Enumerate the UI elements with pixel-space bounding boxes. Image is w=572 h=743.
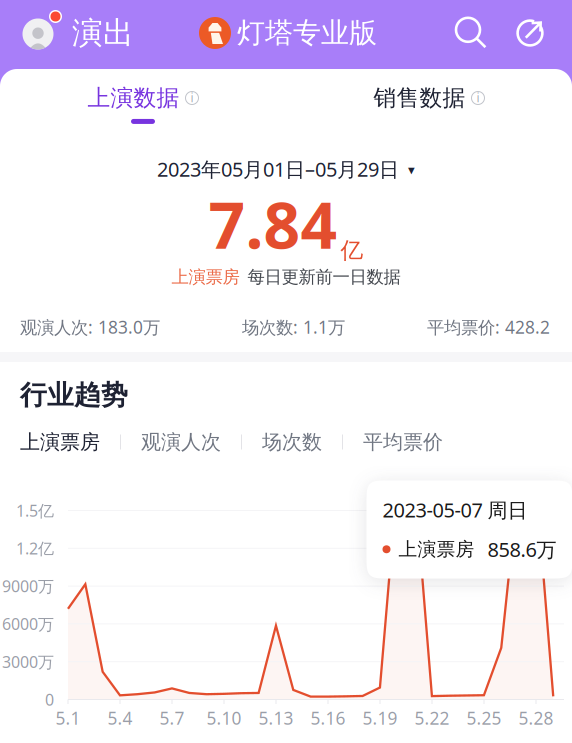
button[interactable]: Search [450,12,490,52]
staticText: 5.16 [310,706,345,729]
staticText: 2023-05-07 周日 [382,496,527,523]
button[interactable]: 上演票房 [20,430,100,454]
staticText: 平均票价: 428.2 [427,315,550,338]
staticText: 5.28 [518,706,553,729]
button[interactable]: Profile [22,18,53,49]
button[interactable]: 演出 [72,14,134,52]
staticText: 销售数据 [373,84,465,112]
staticText: i [190,89,193,105]
staticText: 行业趋势 [20,379,128,411]
staticText: 场次数: 1.1万 [242,315,345,338]
button[interactable]: 平均票价 [363,430,443,454]
staticText: 0 [45,689,54,710]
staticText: 5.19 [362,706,397,729]
staticText: 5.22 [414,706,449,729]
staticText: 2023年05月01日–05月29日 [157,156,399,182]
staticText: 观演人次 [141,430,221,454]
staticText: 亿 [340,237,363,264]
staticText: 灯塔专业版 [237,16,377,50]
staticText: 5.25 [466,706,501,729]
staticText: 3000万 [2,651,54,672]
staticText: 1.5亿 [16,500,54,521]
staticText: 每日更新前一日数据 [247,266,400,288]
staticText: 9000万 [2,575,54,597]
staticText: ▾ [408,162,415,177]
staticText: 平均票价 [363,430,443,454]
staticText: 5.7 [159,706,184,729]
staticText: i [476,89,479,105]
staticText: 858.6万 [487,536,556,563]
staticText: 5.1 [55,706,80,729]
staticText: 观演人次: 183.0万 [20,315,160,338]
button[interactable]: Share [510,12,550,52]
button[interactable]: 销售数据 [373,84,484,124]
staticText: 5.13 [258,706,293,729]
button[interactable]: 观演人次 [141,430,221,454]
button[interactable]: 2023年05月01日–05月29日 [157,156,415,182]
staticText: 5.10 [206,706,241,729]
staticText: 上演数据 [87,84,179,112]
staticText: 演出 [72,14,134,52]
staticText: 5.4 [107,706,132,729]
staticText: 场次数 [262,430,322,454]
staticText: 上演票房 [171,266,239,288]
staticText: 6000万 [2,613,54,634]
staticText: 7.84 [208,181,337,266]
staticText: 1.2亿 [16,538,54,559]
button[interactable]: 上演数据 [87,84,198,124]
staticText: 上演票房 [20,430,100,454]
staticText: 上演票房 [398,538,474,561]
button[interactable]: 场次数 [262,430,322,454]
